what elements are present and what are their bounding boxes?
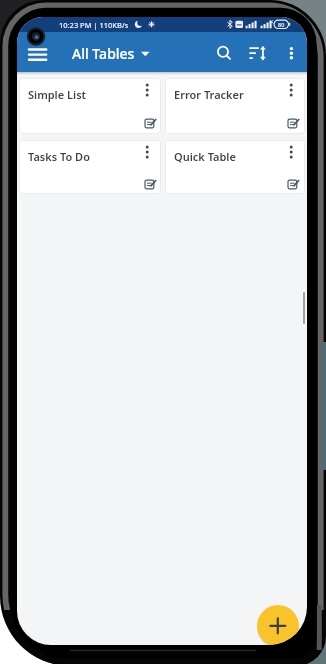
button[interactable]: Simple List [19, 78, 161, 134]
button[interactable] [287, 117, 300, 129]
button[interactable] [257, 605, 299, 645]
staticText: 10:23 PM | 110KB/s [59, 20, 129, 30]
staticText: Error Tracker [174, 87, 244, 102]
button[interactable] [23, 42, 53, 68]
button[interactable] [284, 81, 299, 99]
button[interactable] [140, 81, 155, 99]
button[interactable]: Error Tracker [165, 78, 305, 134]
button[interactable] [284, 143, 299, 161]
button[interactable]: Quick Table [165, 140, 305, 194]
button[interactable] [245, 40, 269, 66]
button[interactable]: Tasks To Do [19, 140, 161, 194]
button[interactable] [280, 40, 302, 66]
staticText: All Tables [72, 44, 135, 63]
button[interactable] [213, 40, 237, 66]
staticText: Simple List [28, 87, 87, 102]
button[interactable]: All Tables [72, 32, 150, 72]
button[interactable] [144, 178, 157, 190]
button[interactable] [140, 143, 155, 161]
button[interactable] [287, 178, 300, 190]
staticText: Quick Table [174, 149, 236, 164]
staticText: Tasks To Do [28, 149, 90, 164]
button[interactable] [144, 117, 157, 129]
staticText: 80 [278, 21, 285, 28]
